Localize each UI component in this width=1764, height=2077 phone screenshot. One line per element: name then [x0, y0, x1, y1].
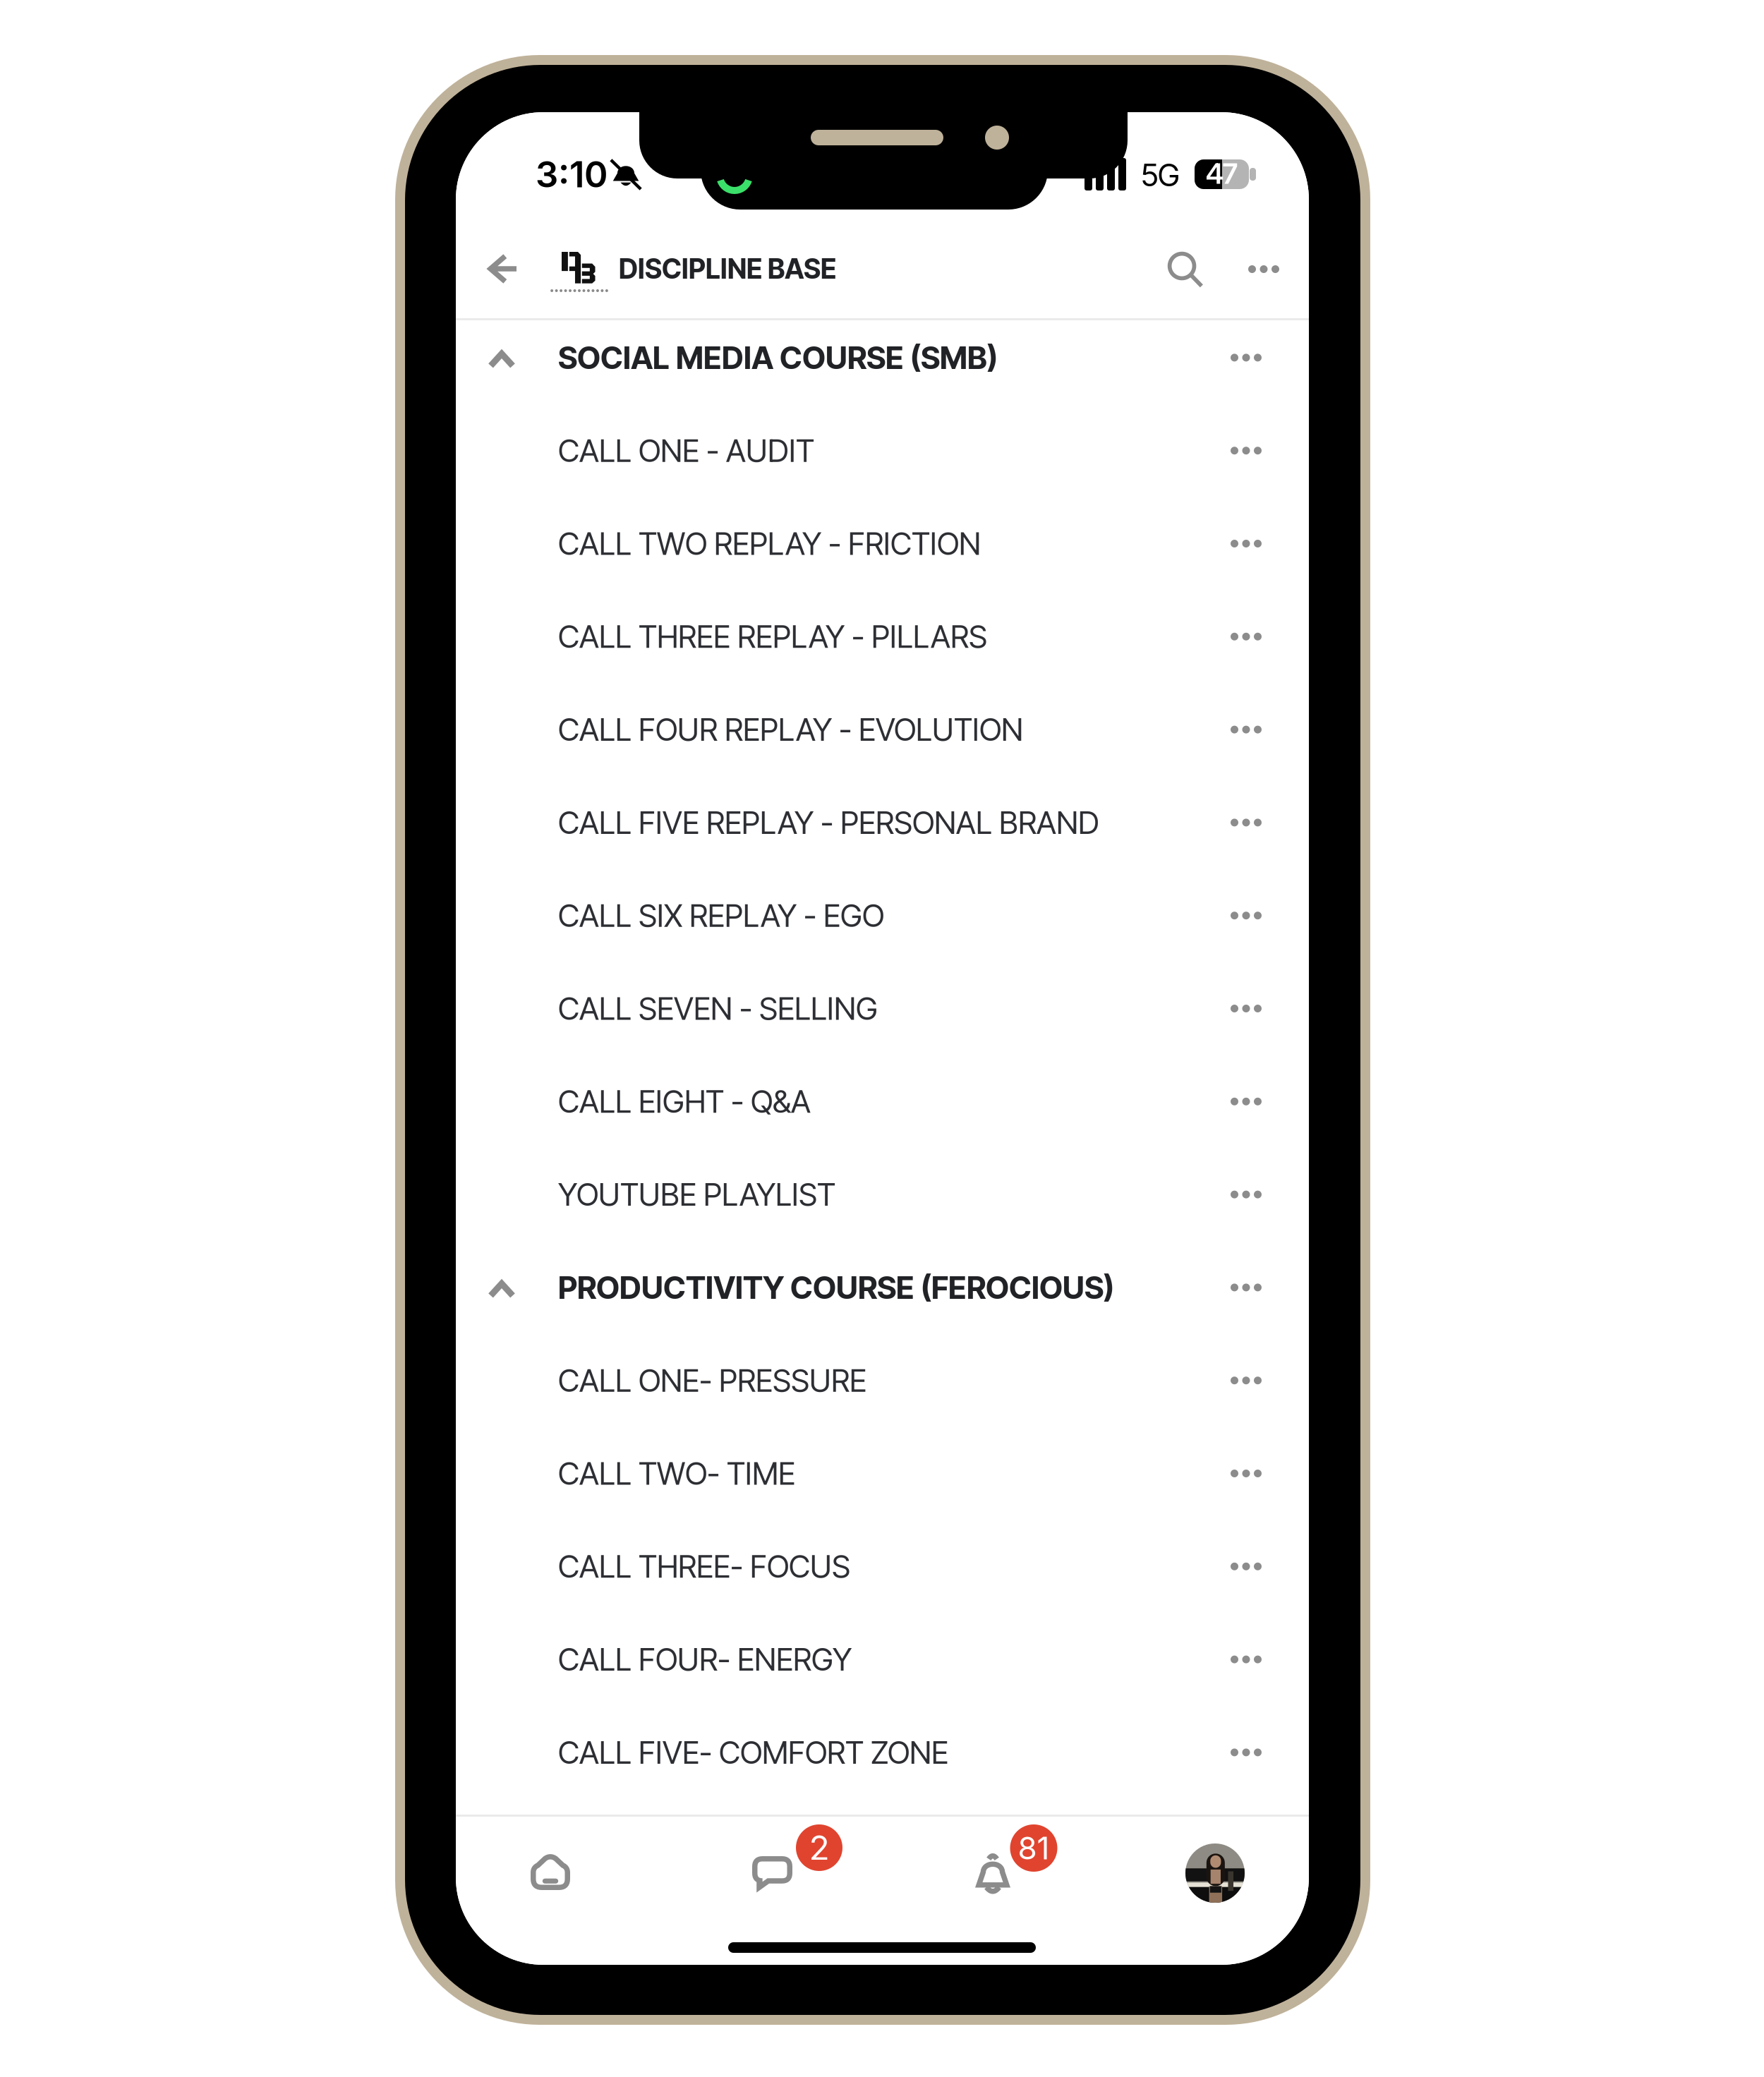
- staticText: CALL ONE - AUDIT: [558, 432, 814, 469]
- button[interactable]: CALL FOUR- ENERGY: [456, 1613, 1309, 1706]
- button[interactable]: CALL TWO- TIME: [456, 1427, 1309, 1520]
- staticText: YOUTUBE PLAYLIST: [558, 1176, 835, 1213]
- staticText: PRODUCTIVITY COURSE (FEROCIOUS): [558, 1269, 1114, 1306]
- button[interactable]: CALL SEVEN - SELLING: [456, 962, 1309, 1055]
- button[interactable]: CALL FIVE REPLAY - PERSONAL BRAND: [456, 776, 1309, 869]
- button[interactable]: Notifications: [977, 1851, 1009, 1894]
- button[interactable]: CALL ONE- PRESSURE: [456, 1334, 1309, 1427]
- button[interactable]: CALL ONE - AUDIT: [456, 404, 1309, 497]
- staticText: CALL FIVE- COMFORT ZONE: [558, 1734, 948, 1771]
- button[interactable]: Home: [531, 1853, 570, 1890]
- staticText: CALL FOUR REPLAY - EVOLUTION: [558, 711, 1023, 748]
- staticText: CALL SIX REPLAY - EGO: [558, 897, 884, 934]
- staticText: 5G: [1141, 156, 1180, 194]
- button[interactable]: YOUTUBE PLAYLIST: [456, 1148, 1309, 1241]
- staticText: CALL EIGHT - Q&A: [558, 1083, 811, 1120]
- staticText: CALL FIVE REPLAY - PERSONAL BRAND: [558, 804, 1099, 841]
- button[interactable]: Back: [488, 253, 519, 284]
- staticText: DISCIPLINE BASE: [619, 252, 836, 285]
- staticText: CALL THREE REPLAY - PILLARS: [558, 618, 987, 655]
- button[interactable]: More options: [1248, 253, 1279, 285]
- staticText: CALL SEVEN - SELLING: [558, 990, 878, 1027]
- staticText: 3:10: [536, 153, 608, 196]
- staticText: SOCIAL MEDIA COURSE (SMB): [558, 339, 998, 376]
- button[interactable]: CALL THREE- FOCUS: [456, 1520, 1309, 1613]
- button[interactable]: CALL THREE REPLAY - PILLARS: [456, 590, 1309, 683]
- staticText: CALL ONE- PRESSURE: [558, 1362, 866, 1399]
- button[interactable]: SOCIAL MEDIA COURSE (SMB): [456, 311, 1309, 404]
- button[interactable]: Profile: [1185, 1843, 1245, 1903]
- button[interactable]: CALL SIX REPLAY - EGO: [456, 869, 1309, 962]
- staticText: 81: [1018, 1829, 1050, 1867]
- staticText: 2: [809, 1827, 829, 1868]
- button[interactable]: CALL EIGHT - Q&A: [456, 1055, 1309, 1148]
- button[interactable]: CALL FIVE- COMFORT ZONE: [456, 1706, 1309, 1799]
- staticText: 47: [1206, 156, 1238, 191]
- staticText: CALL TWO- TIME: [558, 1455, 795, 1492]
- button[interactable]: CALL TWO REPLAY - FRICTION: [456, 497, 1309, 590]
- staticText: CALL THREE- FOCUS: [558, 1548, 850, 1585]
- button[interactable]: PRODUCTIVITY COURSE (FEROCIOUS): [456, 1241, 1309, 1334]
- staticText: CALL TWO REPLAY - FRICTION: [558, 525, 981, 562]
- button[interactable]: Search: [1167, 252, 1204, 289]
- staticText: CALL FOUR- ENERGY: [558, 1641, 852, 1678]
- button[interactable]: CALL FOUR REPLAY - EVOLUTION: [456, 683, 1309, 776]
- button[interactable]: Messages: [752, 1856, 792, 1890]
